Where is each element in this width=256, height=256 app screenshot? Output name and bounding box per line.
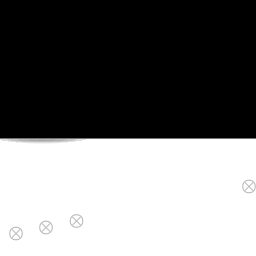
button[interactable]: Second photo (39, 220, 53, 234)
button[interactable]: More (242, 179, 256, 193)
button[interactable]: Third photo (69, 214, 83, 228)
button[interactable]: First photo (9, 226, 23, 240)
